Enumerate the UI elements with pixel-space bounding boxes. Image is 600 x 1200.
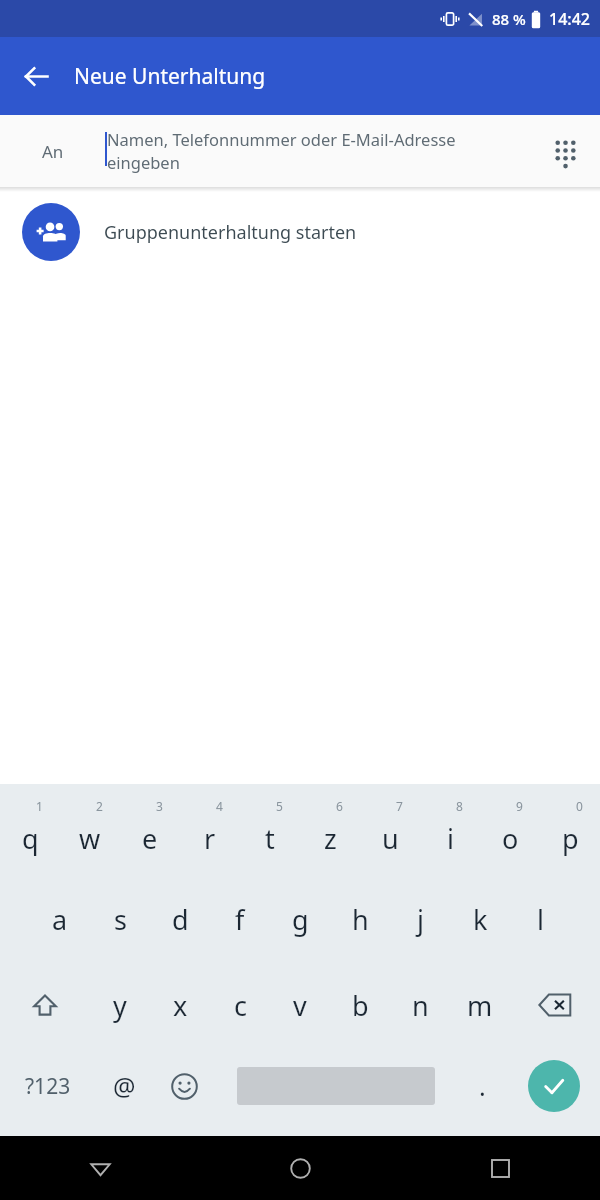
staticText: 0: [576, 798, 583, 814]
staticText: 2: [96, 798, 103, 814]
button[interactable]: 3: [120, 792, 180, 876]
button[interactable]: 1: [0, 792, 60, 876]
staticText: z: [324, 820, 337, 857]
staticText: 4: [216, 798, 223, 814]
button[interactable]: Startseite: [200, 1136, 400, 1200]
button[interactable]: Zurück: [8, 48, 64, 104]
button[interactable]: ?123: [0, 1048, 95, 1124]
staticText: 7: [396, 798, 403, 814]
button[interactable]: Zurück: [0, 1136, 200, 1200]
staticText: ?123: [25, 1072, 71, 1101]
staticText: l: [537, 901, 544, 938]
staticText: s: [114, 901, 127, 938]
button[interactable]: 2: [60, 792, 120, 876]
button[interactable]: s: [90, 876, 150, 962]
button[interactable]: f: [210, 876, 270, 962]
button[interactable]: g: [270, 876, 330, 962]
staticText: q: [22, 820, 39, 857]
staticText: i: [447, 820, 454, 857]
staticText: y: [113, 987, 127, 1024]
staticText: 3: [156, 798, 163, 814]
button[interactable]: j: [390, 876, 450, 962]
staticText: a: [52, 901, 68, 938]
staticText: k: [473, 901, 488, 938]
staticText: @: [113, 1069, 136, 1103]
button[interactable]: Gruppenunterhaltung starten: [0, 192, 600, 272]
staticText: Neue Unterhaltung: [74, 62, 266, 91]
staticText: d: [172, 901, 189, 938]
button[interactable]: l: [510, 876, 570, 962]
staticText: o: [502, 820, 519, 857]
staticText: 6: [336, 798, 343, 814]
button[interactable]: n: [390, 962, 450, 1048]
button[interactable]: 7: [360, 792, 420, 876]
staticText: 88 %: [492, 9, 526, 29]
staticText: u: [382, 820, 399, 857]
staticText: n: [412, 987, 429, 1024]
button[interactable]: m: [450, 962, 510, 1048]
staticText: f: [235, 901, 245, 938]
staticText: e: [142, 820, 158, 857]
staticText: .: [479, 1069, 486, 1103]
button[interactable]: .: [456, 1048, 508, 1124]
staticText: 1: [36, 798, 43, 814]
button[interactable]: 5: [240, 792, 300, 876]
button[interactable]: c: [210, 962, 270, 1048]
staticText: 8: [456, 798, 463, 814]
staticText: Gruppenunterhaltung starten: [104, 220, 357, 245]
button[interactable]: Bestätigen: [528, 1060, 580, 1112]
button[interactable]: d: [150, 876, 210, 962]
staticText: c: [234, 987, 247, 1024]
button[interactable]: 6: [300, 792, 360, 876]
button[interactable]: 8: [420, 792, 480, 876]
button[interactable]: Umschalten: [0, 962, 90, 1048]
staticText: p: [562, 820, 579, 857]
staticText: b: [352, 987, 369, 1024]
staticText: g: [292, 901, 309, 938]
staticText: t: [265, 820, 275, 857]
button[interactable]: v: [270, 962, 330, 1048]
staticText: m: [467, 987, 493, 1024]
staticText: r: [204, 820, 216, 857]
button[interactable]: h: [330, 876, 390, 962]
staticText: h: [352, 901, 369, 938]
staticText: Namen, Telefonnummer oder E-Mail-Adresse…: [107, 128, 530, 174]
button[interactable]: k: [450, 876, 510, 962]
button[interactable]: Löschen: [510, 962, 600, 1048]
staticText: j: [417, 901, 424, 938]
button[interactable]: 0: [540, 792, 600, 876]
button[interactable]: @: [95, 1048, 153, 1124]
button[interactable]: Letzte Apps: [400, 1136, 600, 1200]
button[interactable]: a: [30, 876, 90, 962]
staticText: x: [173, 987, 188, 1024]
button[interactable]: b: [330, 962, 390, 1048]
staticText: w: [79, 820, 101, 857]
button[interactable]: x: [150, 962, 210, 1048]
button[interactable]: y: [90, 962, 150, 1048]
button[interactable]: Emoji: [153, 1048, 215, 1124]
staticText: An: [42, 140, 64, 163]
button[interactable]: 9: [480, 792, 540, 876]
staticText: 14:42: [549, 8, 590, 30]
staticText: v: [293, 987, 307, 1024]
staticText: 5: [276, 798, 283, 814]
staticText: 9: [516, 798, 523, 814]
button[interactable]: Wähltastatur: [530, 115, 600, 187]
button[interactable]: 4: [180, 792, 240, 876]
